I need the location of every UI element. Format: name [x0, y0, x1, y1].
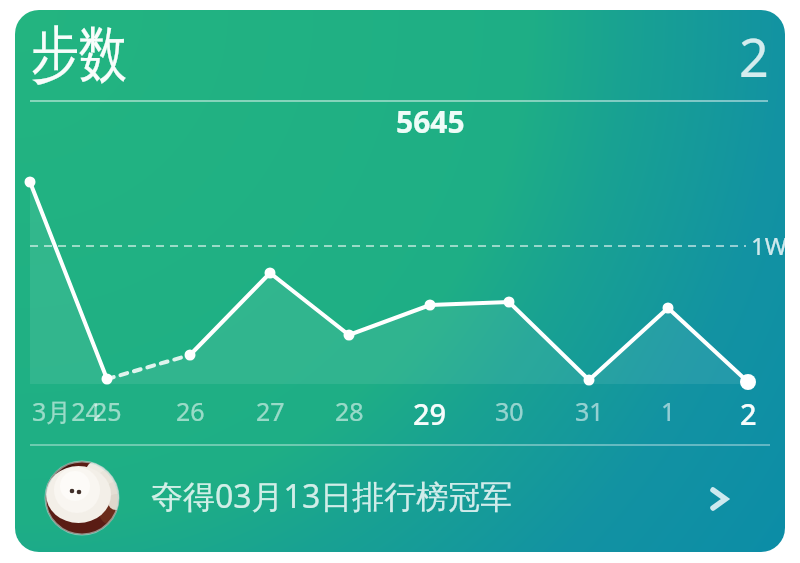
- staticText: 26: [176, 394, 205, 428]
- button[interactable]: 夺得03月13日排行榜冠军: [15, 444, 785, 552]
- staticText: 29: [413, 394, 447, 433]
- staticText: 3月24: [32, 394, 100, 428]
- staticText: 夺得03月13日排行榜冠军: [151, 474, 513, 518]
- staticText: 步数: [31, 17, 127, 93]
- staticText: 2: [739, 21, 769, 92]
- button[interactable]: 步数: [15, 10, 785, 552]
- staticText: 31: [575, 394, 604, 428]
- staticText: 1W: [751, 229, 785, 262]
- staticText: 1: [661, 394, 676, 428]
- staticText: 2: [740, 394, 757, 433]
- staticText: 28: [335, 394, 364, 428]
- staticText: 30: [495, 394, 524, 428]
- staticText: 5645: [396, 101, 465, 142]
- staticText: 27: [256, 394, 285, 428]
- staticText: 25: [93, 394, 122, 428]
